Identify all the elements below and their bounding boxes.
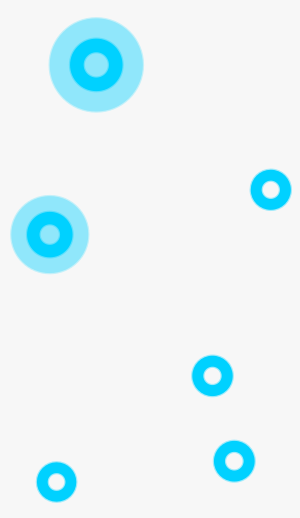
- button[interactable]: Nearby device: [250, 169, 292, 211]
- button[interactable]: Nearby device: [213, 440, 256, 483]
- button[interactable]: Nearby device: [191, 354, 234, 397]
- button[interactable]: Nearby device: [48, 17, 144, 113]
- button[interactable]: Nearby device: [36, 461, 77, 503]
- button[interactable]: Nearby device: [10, 195, 89, 274]
